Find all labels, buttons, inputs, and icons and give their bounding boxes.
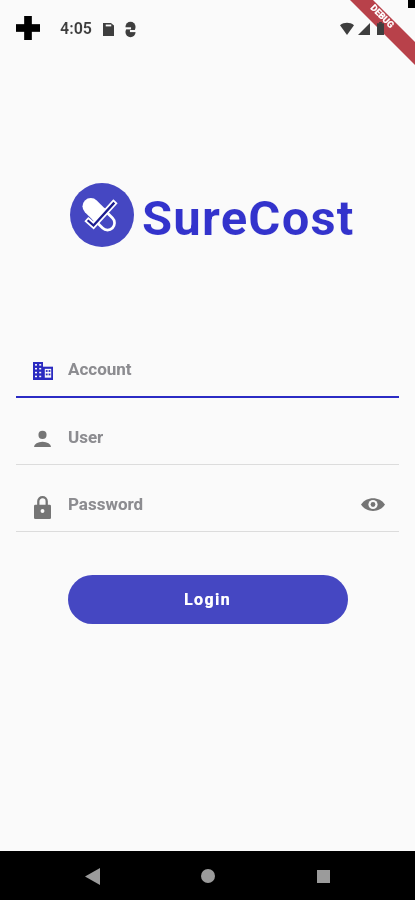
staticText: Login: [184, 590, 232, 609]
staticText: User: [68, 427, 104, 447]
button[interactable]: Password: [16, 486, 399, 532]
staticText: DEBUG: [368, 3, 396, 31]
staticText: Account: [68, 359, 132, 379]
button[interactable]: User: [16, 419, 399, 465]
button[interactable]: Account: [16, 351, 399, 398]
button[interactable]: Home: [184, 852, 232, 900]
button[interactable]: Login: [68, 575, 348, 624]
staticText: 4:05: [60, 19, 93, 38]
button[interactable]: Back: [68, 852, 116, 900]
button[interactable]: Show password: [356, 487, 390, 521]
button[interactable]: Recent apps: [299, 852, 347, 900]
staticText: SureCost: [142, 190, 355, 247]
staticText: Password: [68, 494, 144, 514]
